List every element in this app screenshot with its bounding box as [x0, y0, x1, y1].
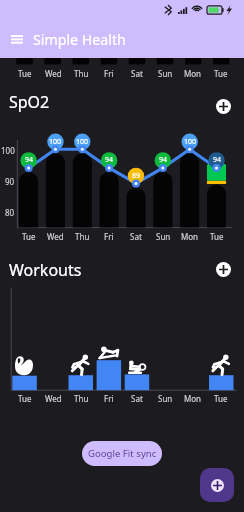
staticText: Simple Health	[33, 30, 126, 49]
staticText: 100	[184, 137, 197, 147]
staticText: Tue	[214, 393, 228, 404]
button[interactable]: Add SpO2	[216, 99, 231, 114]
button[interactable]: Add Workouts	[216, 262, 231, 277]
staticText: Sun	[158, 393, 173, 404]
staticText: Sun	[156, 231, 171, 242]
staticText: Workouts	[9, 259, 82, 281]
staticText: 90	[5, 176, 15, 187]
staticText: 94	[213, 155, 222, 165]
staticText: 94	[105, 155, 114, 165]
staticText: Sat	[131, 393, 143, 404]
staticText: Thu	[74, 393, 89, 404]
staticText: Mon	[184, 393, 202, 404]
staticText: Sat	[130, 231, 142, 242]
staticText: 100	[49, 137, 62, 147]
staticText: SpO2	[9, 91, 50, 113]
staticText: Wed	[47, 231, 64, 242]
staticText: Wed	[45, 68, 62, 79]
staticText: 94	[25, 155, 34, 165]
staticText: 94	[159, 155, 168, 165]
staticText: Thu	[75, 231, 90, 242]
staticText: Mon	[184, 68, 202, 79]
staticText: Thu	[74, 68, 89, 79]
staticText: Fri	[104, 393, 114, 404]
staticText: 100	[76, 137, 89, 147]
staticText: Tue	[210, 231, 224, 242]
staticText: Wed	[45, 393, 62, 404]
staticText: Sat	[131, 68, 143, 79]
staticText: 89	[132, 171, 141, 181]
staticText: Google Fit sync	[88, 447, 157, 460]
staticText: Tue	[18, 393, 32, 404]
staticText: Tue	[214, 68, 228, 79]
staticText: 80	[5, 207, 15, 218]
button[interactable]: Google Fit sync	[82, 441, 162, 466]
staticText: Mon	[181, 231, 199, 242]
staticText: Fri	[104, 68, 114, 79]
staticText: Sun	[158, 68, 173, 79]
staticText: 100	[1, 145, 15, 156]
staticText: Tue	[18, 68, 32, 79]
staticText: Tue	[22, 231, 36, 242]
staticText: Fri	[104, 231, 114, 242]
button[interactable]: Menu	[5, 27, 29, 51]
button[interactable]: Add entry	[200, 468, 234, 502]
